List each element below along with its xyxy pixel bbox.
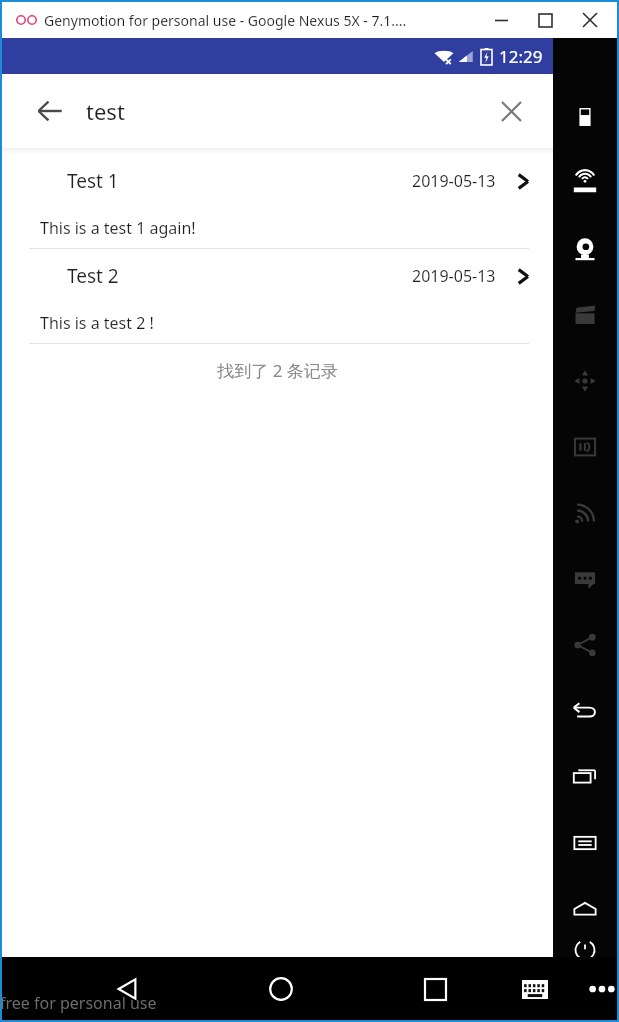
button[interactable]: Network bbox=[553, 480, 617, 546]
button[interactable]: Power bbox=[553, 942, 617, 957]
button[interactable]: Home bbox=[252, 960, 310, 1018]
staticText: 2019-05-13 bbox=[412, 170, 496, 192]
button[interactable]: Close bbox=[567, 3, 613, 37]
button[interactable]: Keyboard bbox=[506, 960, 564, 1018]
button[interactable]: D-pad bbox=[553, 348, 617, 414]
button[interactable]: Menu bbox=[553, 810, 617, 876]
button[interactable]: Back bbox=[553, 678, 617, 744]
button[interactable]: Test 1 bbox=[2, 154, 553, 248]
button[interactable]: Minimize bbox=[479, 3, 523, 37]
staticText: Test 2 bbox=[67, 263, 119, 289]
button[interactable]: GPS bbox=[553, 150, 617, 216]
button[interactable]: Identifiers bbox=[553, 414, 617, 480]
button[interactable]: Back bbox=[98, 960, 156, 1018]
staticText: Test 1 bbox=[67, 168, 119, 194]
button[interactable]: Clear search bbox=[491, 91, 531, 131]
button[interactable]: Maximize bbox=[523, 3, 567, 37]
staticText: test bbox=[86, 96, 125, 126]
button[interactable]: SMS bbox=[553, 546, 617, 612]
button[interactable]: Video recorder bbox=[553, 282, 617, 348]
button[interactable]: Battery bbox=[553, 84, 617, 150]
button[interactable]: Back bbox=[28, 89, 72, 133]
staticText: 2019-05-13 bbox=[412, 265, 496, 287]
button[interactable]: Recents bbox=[553, 744, 617, 810]
button[interactable]: Home bbox=[553, 876, 617, 942]
staticText: Genymotion for personal use - Google Nex… bbox=[44, 11, 407, 30]
button[interactable]: Camera bbox=[553, 216, 617, 282]
staticText: 12:29 bbox=[499, 45, 543, 68]
staticText: This is a test 1 again! bbox=[40, 217, 196, 239]
button[interactable]: Share bbox=[553, 612, 617, 678]
button[interactable]: More options bbox=[586, 960, 617, 1018]
staticText: 找到了 2 条记录 bbox=[217, 359, 338, 382]
button[interactable]: Test 2 bbox=[2, 249, 553, 343]
button[interactable]: Recent apps bbox=[406, 960, 464, 1018]
staticText: free for personal use bbox=[0, 992, 157, 1014]
staticText: This is a test 2 ! bbox=[40, 312, 154, 334]
